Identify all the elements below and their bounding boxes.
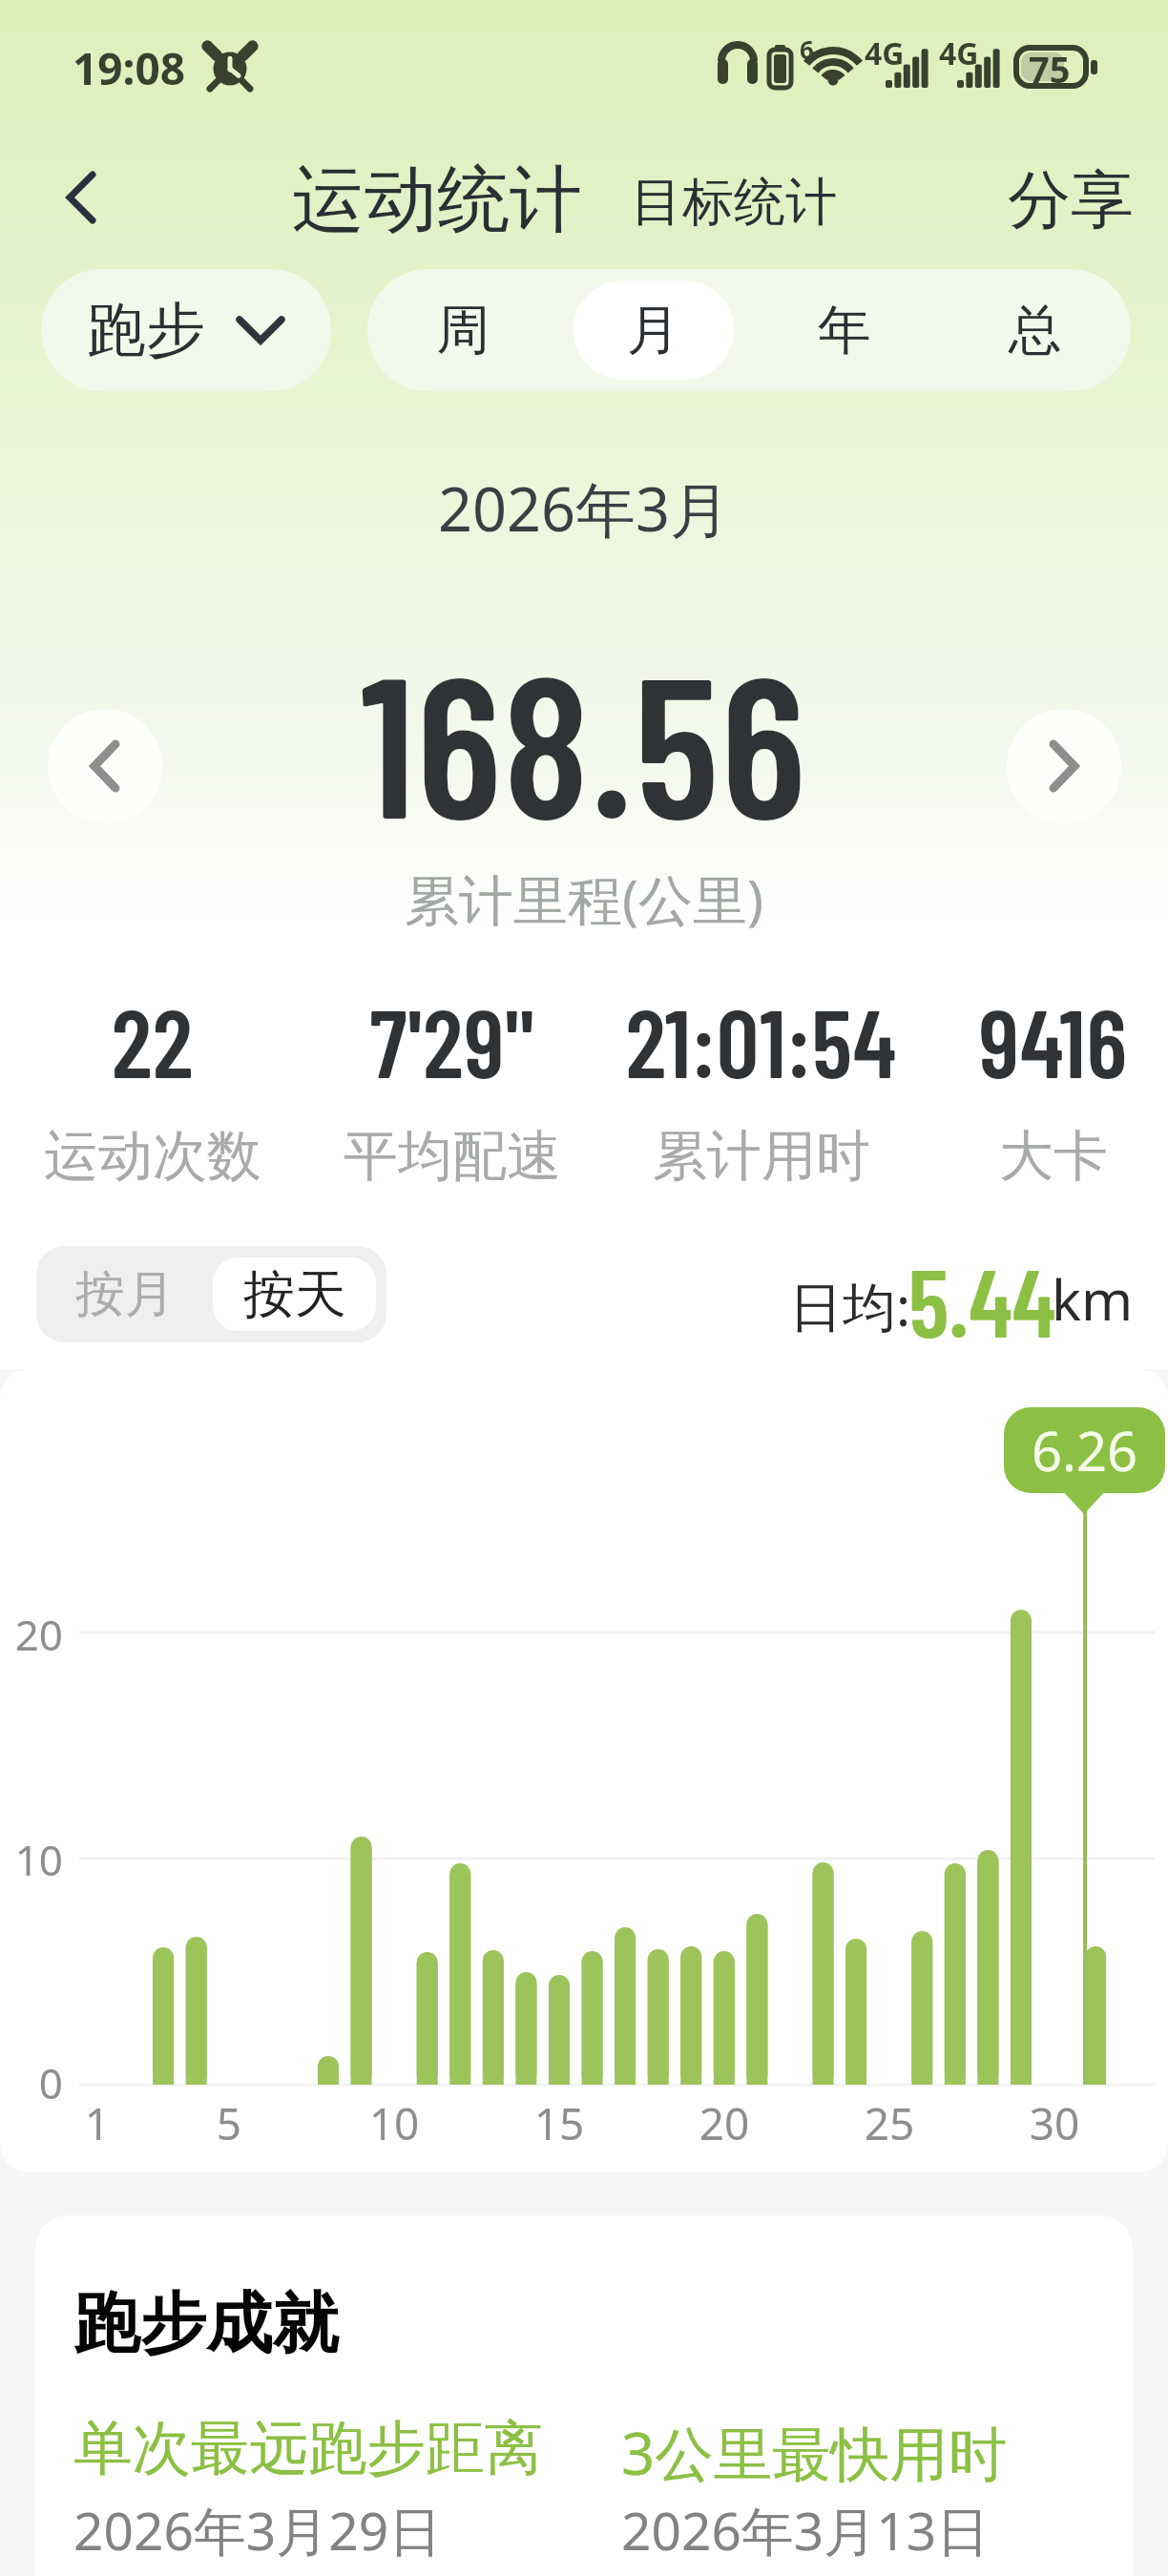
staticText: 10	[0, 1831, 63, 1888]
staticText: 2026年3月29日	[73, 2494, 442, 2566]
staticText: 日均:	[789, 1269, 911, 1341]
staticText: 累计里程(公里)	[0, 862, 1168, 936]
staticText: 9416	[815, 984, 1168, 1097]
button[interactable]: 目标统计	[631, 170, 837, 235]
staticText: 月	[627, 297, 680, 364]
staticText: 30	[997, 2093, 1112, 2153]
button[interactable]: 运动统计	[292, 155, 582, 246]
button[interactable]: 按月	[36, 1246, 213, 1342]
staticText: 累计用时	[523, 1122, 1000, 1191]
button[interactable]: Back	[36, 145, 126, 250]
staticText: 22	[0, 984, 391, 1097]
button[interactable]: 跑步	[41, 269, 331, 391]
staticText: 3公里最快用时	[621, 2412, 1008, 2492]
staticText: 21:01:54	[523, 984, 1000, 1097]
staticText: 15	[502, 2093, 616, 2153]
staticText: 大卡	[815, 1122, 1168, 1191]
staticText: 19:08	[73, 38, 186, 98]
staticText: 总	[1009, 297, 1062, 364]
staticText: 20	[667, 2093, 782, 2153]
staticText: km	[1052, 1261, 1134, 1337]
button[interactable]: 月	[574, 280, 734, 380]
button[interactable]: 总	[955, 280, 1116, 380]
button[interactable]: 周	[383, 280, 543, 380]
staticText: 4G	[939, 32, 979, 74]
staticText: 1	[40, 2093, 155, 2153]
staticText: 5.44	[908, 1243, 1056, 1357]
staticText: 75	[1029, 44, 1071, 93]
button[interactable]: 按天	[213, 1257, 376, 1331]
staticText: 跑步成就	[73, 2282, 339, 2366]
staticText: 0	[0, 2054, 63, 2111]
button[interactable]: Next month	[1007, 709, 1121, 823]
staticText: 20	[0, 1606, 63, 1663]
staticText: 跑步	[87, 293, 205, 367]
staticText: 年	[818, 297, 871, 364]
button[interactable]: 跑步成就	[35, 2215, 1133, 2576]
button[interactable]: Previous month	[48, 709, 162, 823]
button[interactable]: 年	[764, 280, 925, 380]
button[interactable]: 分享	[1008, 160, 1134, 239]
staticText: 7'29"	[214, 984, 691, 1097]
staticText: 25	[832, 2093, 947, 2153]
staticText: 6	[800, 32, 814, 66]
staticText: 2026年3月	[0, 467, 1168, 550]
staticText: 10	[337, 2093, 451, 2153]
staticText: 运动次数	[0, 1122, 391, 1191]
staticText: 按天	[243, 1262, 346, 1327]
staticText: 2026年3月13日	[621, 2494, 990, 2566]
staticText: 单次最远跑步距离	[73, 2412, 543, 2485]
staticText: 平均配速	[214, 1122, 691, 1191]
staticText: 按月	[75, 1263, 175, 1326]
staticText: 6.26	[1032, 1414, 1138, 1486]
staticText: 4G	[865, 32, 905, 74]
staticText: 168.56	[0, 621, 1168, 858]
staticText: 5	[172, 2093, 286, 2153]
staticText: 周	[436, 297, 490, 364]
